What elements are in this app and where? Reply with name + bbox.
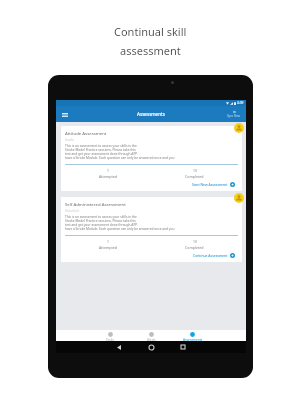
- staticText: Continual skill: [114, 24, 187, 39]
- staticText: Assessments: [137, 111, 165, 117]
- staticText: 10: [193, 239, 197, 244]
- staticText: 10: [193, 168, 197, 173]
- staticText: Completed: [185, 174, 204, 179]
- staticText: Attempted: [99, 174, 118, 179]
- staticText: Start New Assessment: [192, 182, 228, 187]
- staticText: Tasks: [106, 338, 115, 342]
- staticText: 4:39: [237, 101, 244, 105]
- staticText: Continue Assessment: [193, 253, 228, 258]
- button[interactable]: Tasks: [90, 330, 131, 342]
- button[interactable]: Attitude Assessment: [61, 126, 242, 191]
- button[interactable]: Profile: [234, 193, 244, 203]
- staticText: 1: [107, 239, 109, 244]
- staticText: Self Administered Assessment: [65, 201, 126, 207]
- staticText: This is an assessment to assess your ski…: [65, 144, 175, 160]
- button[interactable]: Start New Assessment: [192, 182, 238, 187]
- staticText: Attempted: [99, 245, 118, 250]
- button[interactable]: Sync Now: [227, 110, 241, 118]
- button[interactable]: Back: [114, 342, 124, 352]
- staticText: Unlocked: [65, 209, 80, 213]
- button[interactable]: Continue Assessment: [193, 253, 238, 258]
- button[interactable]: Profile: [234, 123, 244, 133]
- button[interactable]: Alerts: [131, 330, 172, 342]
- button[interactable]: Assessments: [172, 330, 213, 342]
- staticText: This is an assessment to assess your ski…: [65, 215, 175, 231]
- button[interactable]: Home: [146, 342, 156, 352]
- button[interactable]: Recents: [178, 342, 188, 352]
- button[interactable]: Self Administered Assessment: [61, 197, 242, 262]
- staticText: Sync Now: [227, 114, 241, 118]
- staticText: Alerts: [147, 338, 156, 342]
- staticText: Assessments: [183, 338, 203, 342]
- staticText: 1: [107, 168, 109, 173]
- button[interactable]: Menu: [60, 110, 69, 119]
- staticText: Attitude Assessment: [65, 130, 107, 136]
- staticText: Completed: [185, 245, 204, 250]
- staticText: assessment: [120, 43, 181, 58]
- staticText: Grade: [65, 138, 75, 142]
